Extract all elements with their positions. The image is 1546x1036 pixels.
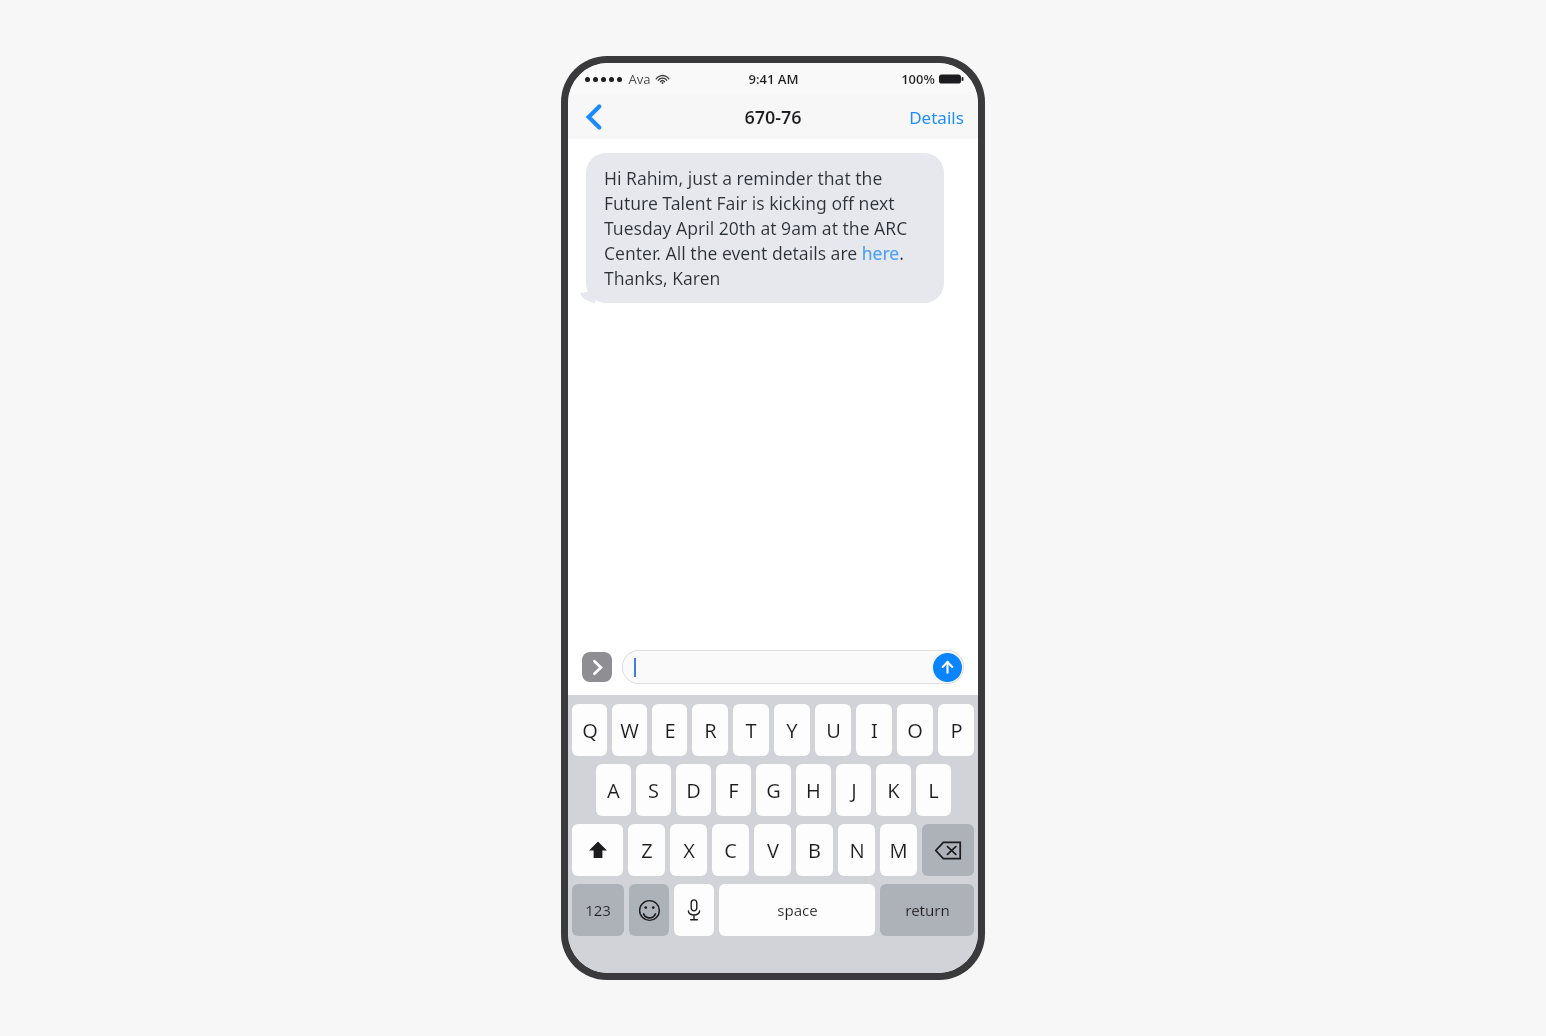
- button[interactable]: G: [756, 764, 791, 816]
- button[interactable]: More apps: [582, 652, 612, 682]
- staticText: L: [928, 777, 939, 804]
- staticText: space: [777, 900, 818, 920]
- button[interactable]: U: [815, 704, 851, 756]
- button[interactable]: Z: [628, 824, 665, 876]
- button[interactable]: R: [692, 704, 728, 756]
- button[interactable]: return: [880, 884, 974, 936]
- button[interactable]: N: [838, 824, 875, 876]
- staticText: Details: [909, 106, 964, 129]
- button[interactable]: P: [938, 704, 974, 756]
- staticText: O: [907, 717, 923, 744]
- button[interactable]: I: [856, 704, 892, 756]
- button[interactable]: Backspace: [922, 824, 974, 876]
- staticText: H: [806, 777, 821, 804]
- staticText: I: [871, 717, 878, 744]
- staticText: W: [620, 717, 639, 744]
- staticText: 123: [585, 900, 611, 920]
- button[interactable]: J: [836, 764, 871, 816]
- button[interactable]: V: [754, 824, 791, 876]
- staticText: Hi Rahim, just a reminder that the Futur…: [604, 166, 926, 290]
- button[interactable]: H: [796, 764, 831, 816]
- button[interactable]: 123: [572, 884, 624, 936]
- staticText: return: [905, 900, 950, 920]
- staticText: R: [704, 717, 717, 744]
- staticText: M: [889, 837, 908, 864]
- button[interactable]: L: [916, 764, 951, 816]
- staticText: Ava: [628, 70, 651, 88]
- staticText: D: [686, 777, 701, 804]
- button[interactable]: T: [733, 704, 769, 756]
- button[interactable]: S: [636, 764, 671, 816]
- button[interactable]: Q: [572, 704, 607, 756]
- staticText: N: [849, 837, 865, 864]
- staticText: U: [826, 717, 841, 744]
- staticText: S: [648, 777, 659, 804]
- button[interactable]: O: [897, 704, 933, 756]
- staticText: K: [887, 777, 900, 804]
- button[interactable]: space: [719, 884, 875, 936]
- button[interactable]: M: [880, 824, 917, 876]
- button[interactable]: Back: [574, 97, 614, 137]
- button[interactable]: D: [676, 764, 711, 816]
- staticText: J: [851, 777, 857, 804]
- button[interactable]: W: [612, 704, 647, 756]
- button[interactable]: Details: [895, 98, 978, 137]
- button[interactable]: X: [670, 824, 707, 876]
- button[interactable]: A: [596, 764, 631, 816]
- button[interactable]: Emoji: [629, 884, 669, 936]
- staticText: Y: [786, 717, 798, 744]
- staticText: E: [664, 717, 676, 744]
- staticText: B: [808, 837, 821, 864]
- staticText: F: [728, 777, 739, 804]
- button[interactable]: Shift: [572, 824, 623, 876]
- staticText: 100%: [901, 70, 935, 88]
- button[interactable]: E: [652, 704, 687, 756]
- button[interactable]: F: [716, 764, 751, 816]
- staticText: 9:41 AM: [748, 70, 799, 88]
- staticText: P: [950, 717, 963, 744]
- button[interactable]: Send: [933, 653, 962, 682]
- staticText: V: [767, 837, 779, 864]
- button[interactable]: C: [712, 824, 749, 876]
- staticText: 670-76: [744, 105, 802, 130]
- staticText: Q: [582, 717, 598, 744]
- button[interactable]: Send: [622, 650, 964, 684]
- staticText: C: [724, 837, 737, 864]
- staticText: T: [745, 717, 757, 744]
- button[interactable]: Dictation: [674, 884, 714, 936]
- button[interactable]: K: [876, 764, 911, 816]
- staticText: X: [683, 837, 695, 864]
- button[interactable]: Hi Rahim, just a reminder that the Futur…: [586, 153, 944, 303]
- staticText: Z: [641, 837, 653, 864]
- button[interactable]: Y: [774, 704, 810, 756]
- staticText: A: [607, 777, 620, 804]
- button[interactable]: B: [796, 824, 833, 876]
- staticText: G: [766, 777, 781, 804]
